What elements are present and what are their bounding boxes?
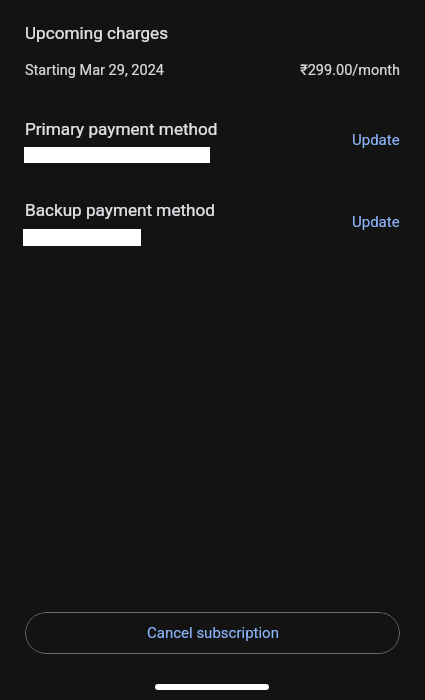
- staticText: ₹299.00/month: [0, 62, 400, 79]
- staticText: Starting Mar 29, 2024: [25, 62, 164, 79]
- staticText: Update: [352, 131, 400, 149]
- button[interactable]: Update: [340, 123, 412, 157]
- button[interactable]: Cancel subscription: [25, 612, 400, 654]
- button[interactable]: Update: [340, 205, 412, 239]
- staticText: Cancel subscription: [147, 624, 279, 642]
- staticText: Upcoming charges: [25, 23, 168, 43]
- staticText: Update: [352, 213, 400, 231]
- staticText: Backup payment method: [25, 200, 215, 220]
- staticText: Primary payment method: [25, 119, 218, 139]
